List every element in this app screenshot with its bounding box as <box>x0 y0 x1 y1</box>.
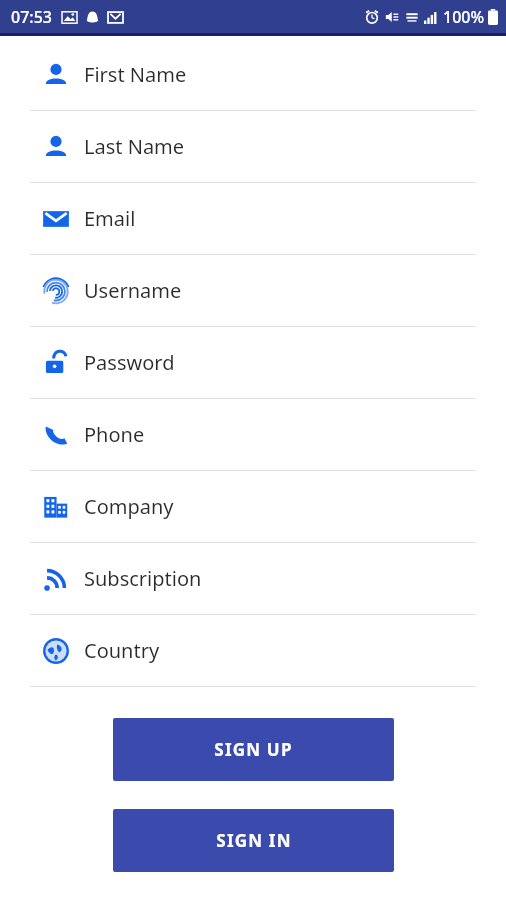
staticText: Subscription <box>84 565 202 592</box>
button[interactable]: Password <box>0 327 506 399</box>
staticText: Password <box>84 349 175 376</box>
button[interactable]: SIGN UP <box>113 718 394 781</box>
staticText: SIGN UP <box>214 738 293 761</box>
button[interactable]: Username <box>0 255 506 327</box>
button[interactable]: Email <box>0 183 506 255</box>
button[interactable]: SIGN IN <box>113 809 394 872</box>
staticText: Company <box>84 493 174 520</box>
staticText: First Name <box>84 61 187 88</box>
button[interactable]: Company <box>0 471 506 543</box>
staticText: Email <box>84 205 136 232</box>
staticText: Country <box>84 637 160 664</box>
button[interactable]: Country <box>0 615 506 687</box>
button[interactable]: Subscription <box>0 543 506 615</box>
button[interactable]: First Name <box>0 39 506 111</box>
staticText: Phone <box>84 421 145 448</box>
staticText: Last Name <box>84 133 185 160</box>
staticText: 100% <box>443 6 485 28</box>
button[interactable]: Last Name <box>0 111 506 183</box>
staticText: 07:53 <box>11 6 52 28</box>
staticText: Username <box>84 277 182 304</box>
button[interactable]: Phone <box>0 399 506 471</box>
staticText: SIGN IN <box>216 829 292 852</box>
